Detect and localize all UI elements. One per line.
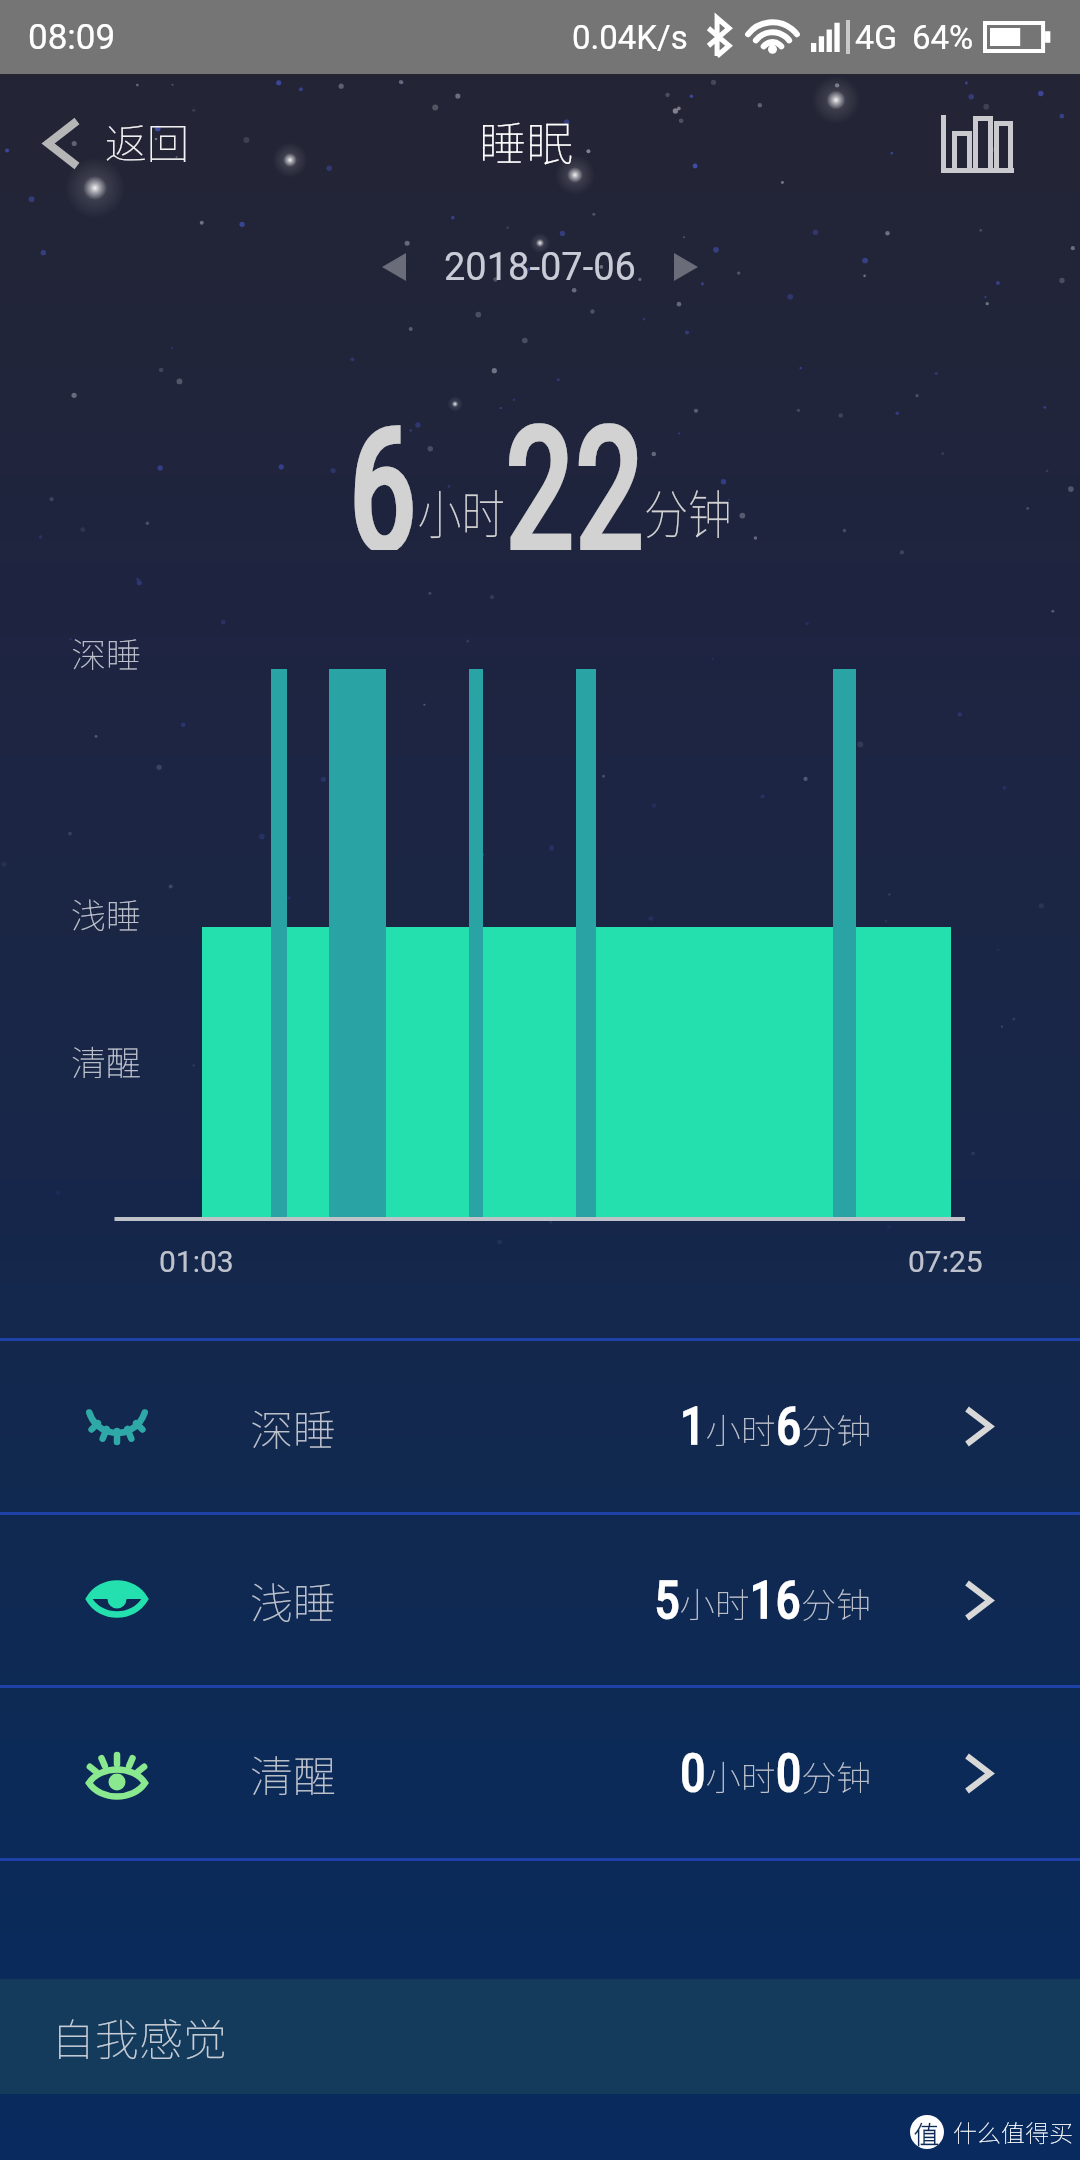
button[interactable]: Next day bbox=[656, 235, 716, 299]
staticText: 清醒 bbox=[71, 1035, 142, 1086]
button[interactable]: Statistics bbox=[921, 103, 1080, 185]
staticText: 07:25 bbox=[908, 1244, 983, 1279]
staticText: 值 bbox=[914, 2115, 940, 2149]
staticText: 5小时16分钟 bbox=[654, 1570, 872, 1631]
staticText: 6小时22分钟 bbox=[348, 390, 732, 550]
staticText: 2018-07-06 bbox=[444, 245, 636, 290]
button[interactable]: 返回 bbox=[0, 96, 220, 190]
button[interactable]: Previous day bbox=[364, 235, 424, 299]
staticText: 自我感觉 bbox=[51, 2005, 227, 2069]
staticText: 01:03 bbox=[159, 1244, 234, 1279]
button[interactable]: 深睡 bbox=[0, 1341, 1080, 1512]
staticText: 64% bbox=[912, 18, 974, 57]
staticText: 浅睡 bbox=[250, 1569, 336, 1631]
staticText: 深睡 bbox=[71, 627, 142, 678]
staticText: 清醒 bbox=[250, 1742, 336, 1804]
staticText: 0.04K/s bbox=[572, 18, 688, 57]
staticText: 什么值得买 bbox=[953, 2114, 1073, 2149]
staticText: 4G bbox=[855, 17, 898, 57]
staticText: 睡眠 bbox=[479, 106, 573, 174]
button[interactable]: 浅睡 bbox=[0, 1515, 1080, 1685]
staticText: 0小时0分钟 bbox=[680, 1743, 872, 1804]
button[interactable]: 清醒 bbox=[0, 1688, 1080, 1858]
staticText: 浅睡 bbox=[71, 888, 142, 939]
staticText: 返回 bbox=[105, 110, 190, 171]
staticText: 1小时6分钟 bbox=[680, 1396, 872, 1457]
button[interactable]: 自我感觉 bbox=[0, 1979, 1080, 2094]
staticText: 深睡 bbox=[250, 1396, 336, 1458]
staticText: 08:09 bbox=[28, 17, 116, 58]
